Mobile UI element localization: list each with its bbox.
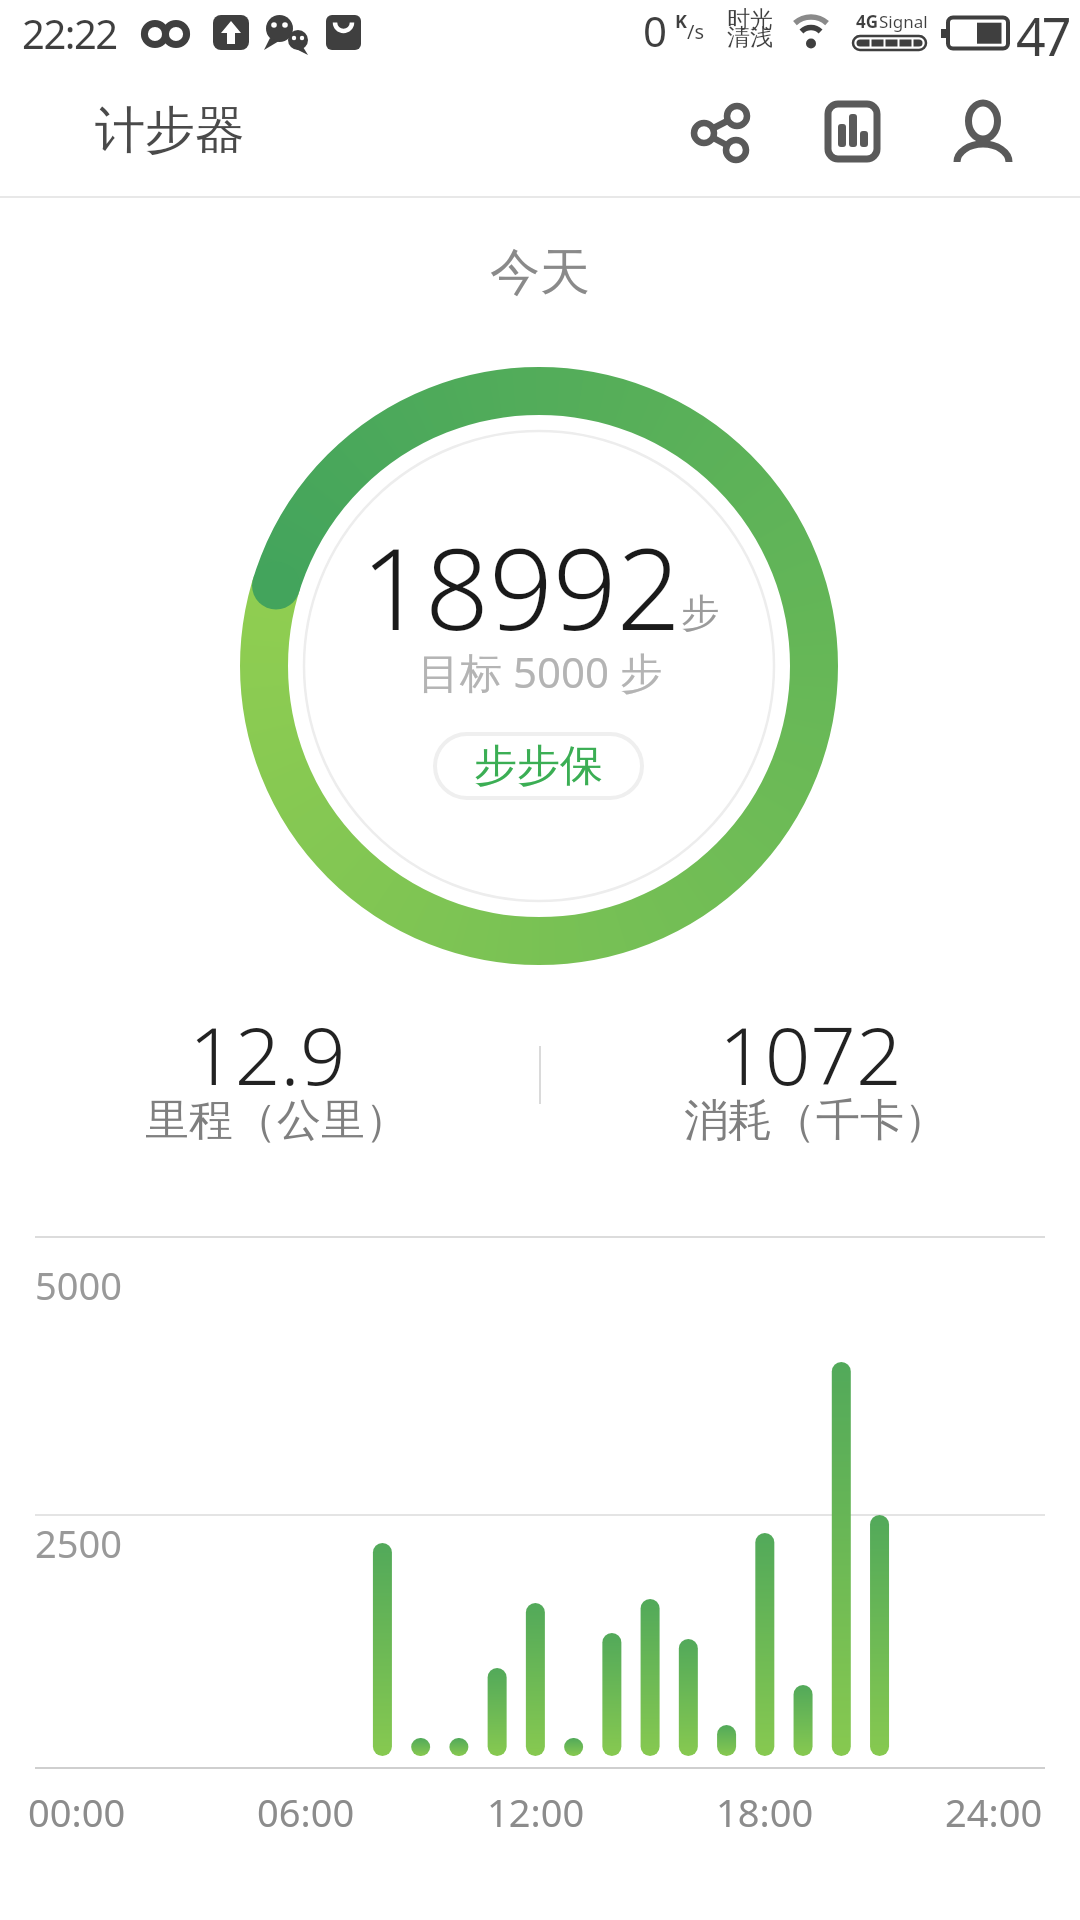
staticText: 18:00 bbox=[716, 1786, 814, 1838]
staticText: 消耗（千卡） bbox=[684, 1093, 948, 1148]
staticText: 4G bbox=[856, 10, 879, 33]
staticText: 06:00 bbox=[257, 1786, 355, 1838]
button[interactable] bbox=[945, 95, 1025, 175]
staticText: 步 bbox=[681, 589, 719, 637]
staticText: 5000 bbox=[35, 1259, 122, 1311]
staticText: 24:00 bbox=[945, 1786, 1043, 1838]
staticText: 计步器 bbox=[95, 99, 245, 162]
staticText: 目标 5000 步 bbox=[418, 643, 662, 700]
staticText: 2500 bbox=[35, 1517, 122, 1569]
button[interactable] bbox=[680, 95, 760, 175]
staticText: 47 bbox=[1016, 0, 1068, 71]
staticText: Signal bbox=[879, 10, 928, 33]
staticText: 今天 bbox=[490, 241, 590, 304]
staticText: 12:00 bbox=[487, 1786, 585, 1838]
staticText: 12.9 bbox=[189, 999, 346, 1108]
staticText: 0 bbox=[643, 2, 668, 59]
staticText: 1072 bbox=[719, 999, 902, 1108]
staticText: 时光 bbox=[727, 5, 773, 34]
button[interactable]: 步步保 bbox=[433, 732, 644, 800]
staticText: 22:22 bbox=[22, 6, 117, 60]
staticText: 清浅 bbox=[727, 23, 773, 52]
button[interactable] bbox=[812, 95, 892, 175]
staticText: 00:00 bbox=[28, 1786, 126, 1838]
staticText: 步步保 bbox=[474, 739, 603, 793]
staticText: 里程（公里） bbox=[145, 1093, 409, 1148]
staticText: K bbox=[675, 9, 687, 34]
staticText: /s bbox=[687, 18, 705, 45]
staticText: 18992 bbox=[361, 510, 681, 663]
